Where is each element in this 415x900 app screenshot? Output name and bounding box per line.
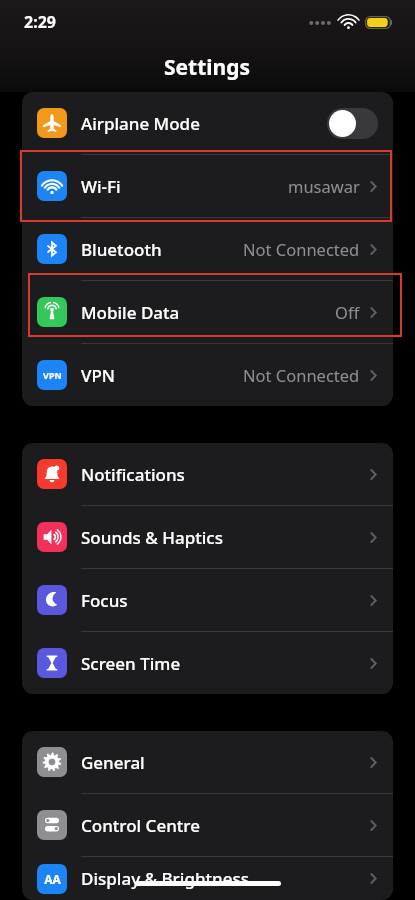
staticText: Focus <box>81 589 128 612</box>
staticText: AA <box>44 871 61 887</box>
button[interactable]: Focus <box>22 569 393 632</box>
button[interactable]: Airplane Mode toggle, off <box>327 108 378 139</box>
staticText: VPN <box>43 369 62 381</box>
staticText: Control Centre <box>81 814 200 837</box>
staticText: Mobile Data <box>81 301 180 324</box>
button[interactable]: Wi-Fi <box>22 155 393 218</box>
staticText: Bluetooth <box>81 238 162 261</box>
staticText: Settings <box>164 53 251 82</box>
staticText: Airplane Mode <box>81 112 200 135</box>
staticText: Display & Brightness <box>81 867 250 890</box>
staticText: VPN <box>81 364 116 387</box>
staticText: Wi-Fi <box>81 175 121 198</box>
button[interactable]: Bluetooth <box>22 218 393 281</box>
button[interactable]: Screen Time <box>22 632 393 694</box>
button[interactable]: Mobile Data <box>22 281 393 344</box>
button[interactable]: Airplane Mode <box>22 92 393 155</box>
staticText: General <box>81 751 145 774</box>
staticText: Not Connected <box>243 364 360 386</box>
button[interactable]: General <box>22 731 393 794</box>
staticText: musawar <box>288 175 360 197</box>
button[interactable]: VPN <box>22 344 393 406</box>
button[interactable]: Control Centre <box>22 794 393 857</box>
staticText: Not Connected <box>243 238 360 260</box>
staticText: Off <box>335 301 360 323</box>
staticText: 2:29 <box>24 11 56 33</box>
staticText: Notifications <box>81 463 185 486</box>
button[interactable]: Notifications <box>22 443 393 506</box>
button[interactable]: Sounds & Haptics <box>22 506 393 569</box>
button[interactable]: AA <box>22 857 393 900</box>
staticText: Screen Time <box>81 652 181 675</box>
staticText: Sounds & Haptics <box>81 526 223 549</box>
